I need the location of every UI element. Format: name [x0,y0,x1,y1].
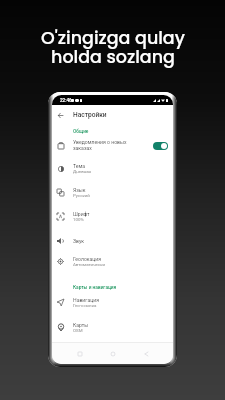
button[interactable]: Toggle notifications [153,142,168,150]
button[interactable]: Back [140,347,153,360]
staticText: Навигация [73,297,99,303]
button[interactable]: Уведомления о новых заказах [52,134,173,157]
staticText: 22:46 [60,98,72,103]
staticText: 100% [73,217,84,222]
button[interactable]: Геолокация [52,250,173,273]
staticText: Звук [73,238,85,244]
staticText: Настройки [73,111,107,119]
staticText: Дневная [73,169,92,174]
staticText: Тема [73,163,86,169]
staticText: Общие [73,129,89,135]
staticText: Русский [73,193,90,198]
staticText: Язык [73,187,86,193]
staticText: Карты и навигация [73,285,117,291]
button[interactable]: Навигация [52,291,173,314]
button[interactable]: Back [54,109,66,121]
staticText: O'zingizga qulay holda sozlang [41,26,185,69]
button[interactable]: Recents [73,347,86,360]
staticText: Автоматически [73,262,106,267]
staticText: Карты [73,322,89,328]
button[interactable]: Тема [52,157,173,180]
button[interactable]: Home [106,347,119,360]
button[interactable]: Язык [52,181,173,204]
button[interactable]: Карты [52,316,173,339]
staticText: Уведомления о новых заказах [73,139,145,152]
staticText: Геолокация [73,256,102,262]
button[interactable]: Звук [52,229,173,252]
button[interactable]: Шрифт [52,205,173,228]
staticText: Шрифт [73,211,90,217]
staticText: OSM [73,328,83,333]
staticText: Гео-ссылка [73,303,97,308]
